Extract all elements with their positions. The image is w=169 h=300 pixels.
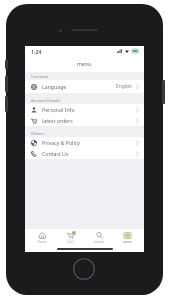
staticText: Cart [67,240,74,244]
staticText: latest orders [42,117,73,124]
staticText: Language [42,83,67,90]
staticText: English [116,83,133,90]
button[interactable]: latest orders [25,115,144,126]
staticText: Personal Info [42,106,75,113]
staticText: Privacy & Policy [42,139,80,146]
button[interactable]: Personal Info [25,104,144,115]
button[interactable]: menu [115,232,139,244]
staticText: search [94,240,104,244]
staticText: Others [31,131,44,136]
staticText: menu [123,240,132,244]
button[interactable]: Home [30,232,54,244]
button[interactable]: Contact Us [25,148,144,159]
button[interactable]: Privacy & Policy [25,137,144,148]
staticText: Common [31,74,49,79]
button[interactable]: Cart [58,232,82,244]
button[interactable]: search [87,232,111,244]
staticText: Home [37,240,47,244]
staticText: menu [77,60,92,67]
staticText: 1:24 [31,48,42,55]
staticText: Account Details [31,98,61,103]
button[interactable]: Language [25,80,144,93]
staticText: Contact Us [42,150,69,157]
